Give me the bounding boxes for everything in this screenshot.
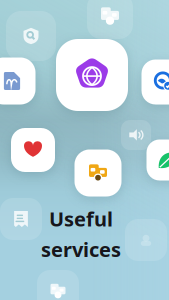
staticText: Useful	[49, 205, 113, 232]
staticText: services	[41, 236, 121, 263]
